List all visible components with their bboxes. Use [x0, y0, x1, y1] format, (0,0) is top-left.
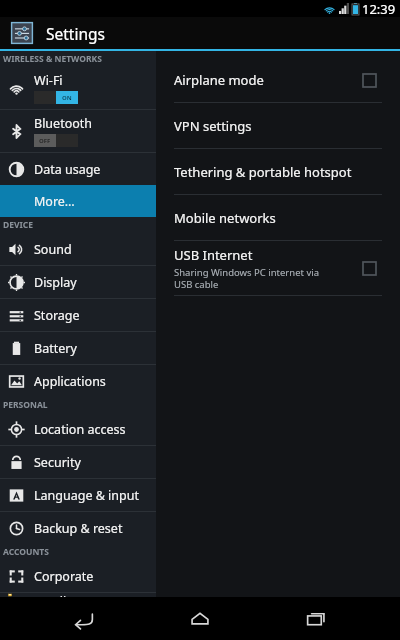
staticText: Applications — [34, 373, 106, 390]
staticText: Location access — [34, 421, 126, 438]
button[interactable]: Language & input — [0, 479, 156, 511]
button[interactable]: VPN settings — [156, 103, 400, 148]
button[interactable]: USB Internet checkbox — [354, 253, 384, 283]
button[interactable]: Storage — [0, 299, 156, 331]
button[interactable]: Sound — [0, 233, 156, 265]
other: Settings app icon — [9, 20, 35, 46]
staticText: PERSONAL — [3, 399, 48, 411]
staticText: Sound — [34, 241, 72, 258]
button[interactable]: Wi-Fi — [0, 67, 156, 109]
staticText: 12:39 — [362, 0, 396, 17]
staticText: More… — [34, 193, 75, 210]
button[interactable]: Backup & reset — [0, 512, 156, 544]
button[interactable]: OFF — [34, 134, 78, 147]
button[interactable]: Security — [0, 446, 156, 478]
button[interactable]: Bluetooth — [0, 110, 156, 152]
staticText: Airplane mode — [174, 71, 264, 89]
staticText: OFF — [39, 137, 51, 145]
staticText: VPN settings — [174, 117, 252, 135]
staticText: DEVICE — [3, 219, 34, 231]
button[interactable]: Applications — [0, 365, 156, 397]
staticText: Tethering & portable hotspot — [174, 163, 352, 181]
button[interactable]: Corporate — [0, 560, 156, 592]
staticText: ACCOUNTS — [3, 546, 49, 558]
button[interactable]: Data usage — [0, 153, 156, 185]
staticText: ON — [62, 94, 72, 102]
button[interactable]: Mobile networks — [156, 195, 400, 240]
staticText: Corporate — [34, 568, 94, 585]
staticText: Wi-Fi — [34, 72, 63, 89]
staticText: Storage — [34, 307, 80, 324]
staticText: Bluetooth — [34, 115, 93, 132]
staticText: WIRELESS & NETWORKS — [3, 53, 102, 65]
button[interactable]: Airplane mode checkbox — [354, 65, 384, 95]
staticText: Backup & reset — [34, 520, 123, 537]
button[interactable]: Location access — [0, 413, 156, 445]
staticText: USB Internet — [174, 246, 253, 264]
button[interactable]: ON — [34, 91, 78, 104]
staticText: Mobile networks — [174, 209, 276, 227]
staticText: Display — [34, 274, 77, 291]
button[interactable]: More… — [0, 185, 156, 217]
staticText: Settings — [46, 23, 105, 44]
staticText: Language & input — [34, 487, 139, 504]
button[interactable]: Battery — [0, 332, 156, 364]
button[interactable]: USB Internet — [156, 241, 400, 295]
button[interactable]: Email — [0, 593, 156, 597]
staticText: Sharing Windows PC internet via USB cabl… — [174, 266, 320, 291]
staticText: Battery — [34, 340, 77, 357]
button[interactable]: Tethering & portable hotspot — [156, 149, 400, 194]
button[interactable]: Display — [0, 266, 156, 298]
staticText: Email — [34, 593, 67, 597]
button[interactable]: Recents — [289, 597, 343, 640]
button[interactable]: Airplane mode — [156, 57, 400, 102]
button[interactable]: Back — [57, 597, 111, 640]
button[interactable]: Home — [173, 597, 227, 640]
staticText: Data usage — [34, 161, 101, 178]
staticText: Security — [34, 454, 81, 471]
